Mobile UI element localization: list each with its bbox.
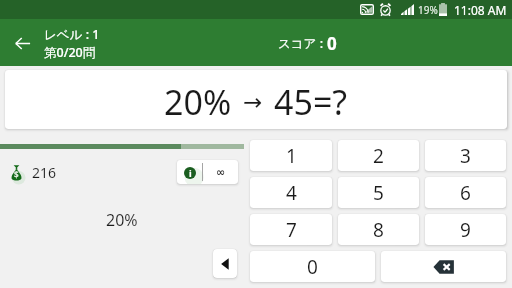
button[interactable]: 2: [338, 140, 419, 171]
staticText: 0: [307, 254, 318, 280]
staticText: →: [243, 89, 263, 116]
button[interactable]: 8: [338, 214, 419, 245]
staticText: i: [189, 167, 192, 179]
button[interactable]: 4: [250, 177, 332, 208]
staticText: スコア :: [278, 35, 327, 52]
staticText: $: [14, 169, 19, 180]
staticText: 9: [460, 217, 471, 243]
staticText: 5: [373, 180, 384, 206]
staticText: 20%: [106, 209, 138, 231]
button[interactable]: Back: [7, 28, 37, 58]
button[interactable]: Backspace: [381, 251, 506, 282]
staticText: 6: [460, 180, 471, 206]
staticText: 216: [32, 163, 57, 182]
staticText: 7: [286, 217, 297, 243]
staticText: 3: [460, 143, 471, 169]
button[interactable]: 5: [338, 177, 419, 208]
button[interactable]: 9: [425, 214, 506, 245]
button[interactable]: 3: [425, 140, 506, 171]
button[interactable]: 1: [250, 140, 332, 171]
button[interactable]: Hint, unlimited: [177, 160, 238, 184]
staticText: 11:08 AM: [454, 2, 507, 18]
button[interactable]: 0: [250, 251, 375, 282]
staticText: 4: [286, 180, 297, 206]
button[interactable]: Previous: [213, 249, 237, 278]
staticText: 第0/20問: [44, 44, 96, 61]
staticText: 2: [373, 143, 384, 169]
staticText: 45=?: [274, 79, 348, 125]
button[interactable]: 6: [425, 177, 506, 208]
staticText: 1: [286, 143, 297, 169]
button[interactable]: 7: [250, 214, 332, 245]
staticText: 0: [327, 32, 337, 55]
staticText: レベル : 1: [44, 26, 100, 43]
staticText: ∞: [216, 166, 226, 179]
staticText: 8: [373, 217, 384, 243]
staticText: 20%: [164, 79, 232, 125]
staticText: 19%: [418, 3, 438, 17]
